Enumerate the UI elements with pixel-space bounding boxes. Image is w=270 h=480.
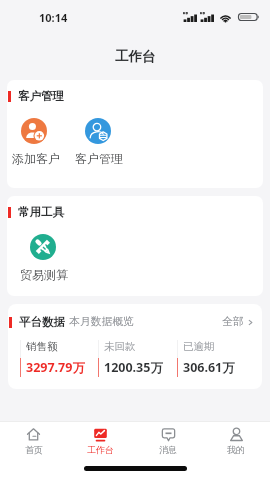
button[interactable]: 贸易测算	[16, 234, 72, 282]
staticText: 贸易测算	[20, 267, 68, 282]
staticText: 本月数据概览	[69, 315, 134, 329]
staticText: 全部	[222, 315, 244, 329]
staticText: 306.61万	[183, 359, 235, 376]
staticText: 我的	[227, 444, 245, 455]
button[interactable]: 消息	[134, 422, 202, 460]
staticText: 已逾期	[183, 340, 215, 353]
staticText: 添加客户	[12, 151, 60, 166]
staticText: 工作台	[115, 48, 156, 65]
staticText: 客户管理	[18, 89, 64, 103]
button[interactable]: 首页	[0, 422, 67, 460]
staticText: 首页	[25, 444, 43, 455]
staticText: 销售额	[26, 340, 58, 353]
staticText: 常用工具	[18, 205, 64, 219]
staticText: 1200.35万	[104, 359, 163, 376]
button[interactable]: 客户管理	[71, 118, 127, 166]
button[interactable]: 工作台	[67, 422, 134, 460]
staticText: 10:14	[39, 10, 68, 25]
staticText: 客户管理	[75, 151, 123, 166]
button[interactable]: 我的	[202, 422, 270, 460]
button[interactable]: 全部	[222, 315, 254, 329]
staticText: 未回款	[104, 340, 136, 353]
staticText: 消息	[159, 444, 177, 455]
staticText: 平台数据	[19, 315, 65, 329]
staticText: 工作台	[87, 444, 114, 455]
staticText: 3297.79万	[26, 359, 85, 376]
button[interactable]: 添加客户	[8, 118, 64, 166]
